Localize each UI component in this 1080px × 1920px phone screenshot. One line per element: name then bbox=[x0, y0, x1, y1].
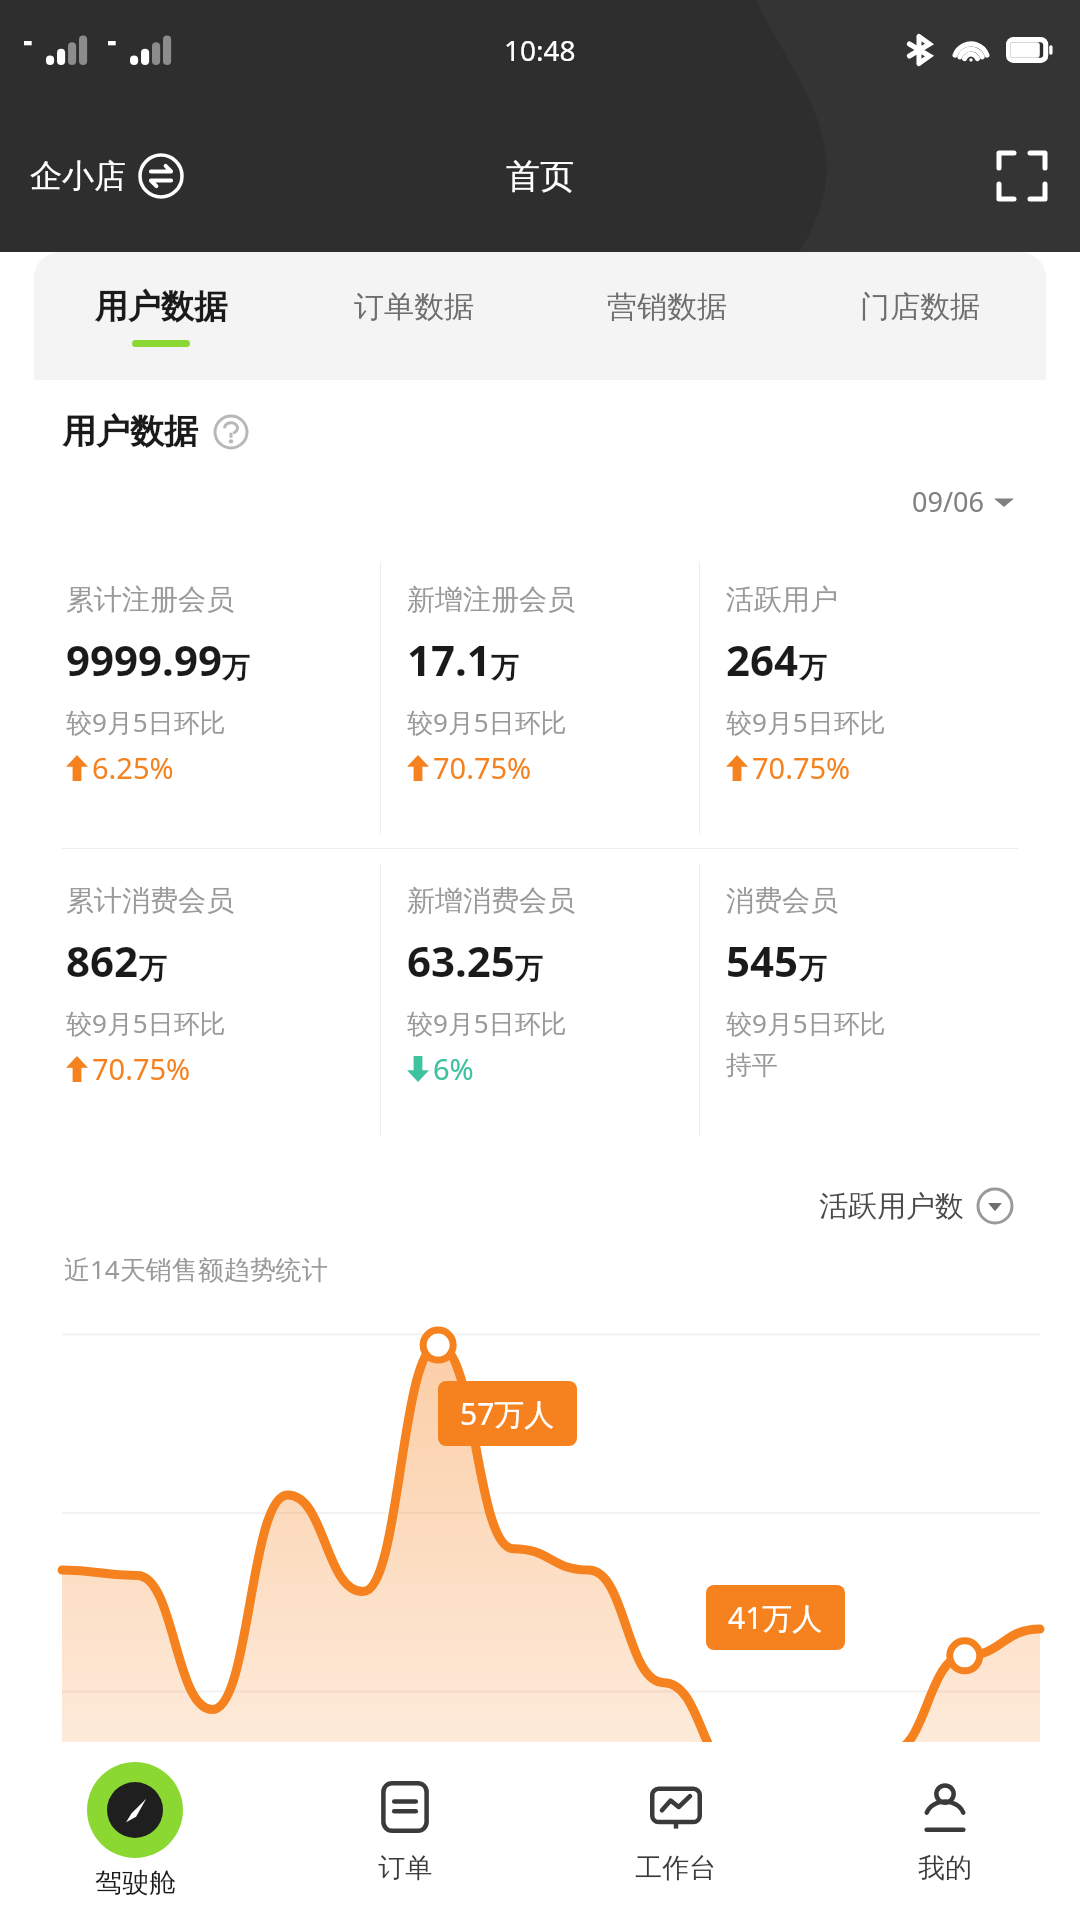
staticText: 70.75% bbox=[433, 748, 532, 787]
staticText: 545 bbox=[726, 932, 799, 989]
staticText: 首页 bbox=[506, 155, 574, 198]
staticText: 用户数据 bbox=[95, 286, 227, 328]
staticText: 用户数据 bbox=[62, 410, 198, 453]
staticText: 70.75% bbox=[92, 1049, 191, 1088]
button[interactable]: 门店数据 bbox=[793, 252, 1046, 380]
staticText: 累计注册会员 bbox=[66, 582, 234, 617]
button[interactable]: 累计消费会员 bbox=[62, 849, 380, 1149]
staticText: 10:48 bbox=[504, 31, 576, 69]
staticText: 企小店 bbox=[30, 156, 126, 196]
button[interactable]: 09/06 bbox=[908, 479, 1018, 524]
staticText: 我的 bbox=[918, 1851, 972, 1885]
staticText: 较9月5日环比 bbox=[407, 704, 567, 740]
staticText: 消费会员 bbox=[726, 883, 838, 918]
staticText: 累计消费会员 bbox=[66, 883, 234, 918]
staticText: 万 bbox=[515, 951, 543, 986]
staticText: 较9月5日环比 bbox=[66, 704, 226, 740]
staticText: 订单数据 bbox=[354, 288, 474, 326]
staticText: 持平 bbox=[726, 1049, 778, 1082]
button[interactable]: 累计注册会员 bbox=[62, 548, 380, 848]
staticText: 新增消费会员 bbox=[407, 883, 575, 918]
staticText: 近14天销售额趋势统计 bbox=[64, 1251, 328, 1287]
staticText: 6% bbox=[433, 1049, 474, 1088]
button[interactable]: 驾驶舱 bbox=[0, 1742, 270, 1920]
staticText: 订单 bbox=[378, 1851, 432, 1885]
button[interactable]: Help bbox=[212, 413, 250, 451]
staticText: 活跃用户数 bbox=[819, 1188, 964, 1225]
button[interactable]: 新增消费会员 bbox=[381, 849, 699, 1149]
staticText: 63.25 bbox=[407, 932, 515, 989]
button[interactable]: 订单 bbox=[270, 1742, 540, 1920]
staticText: 万 bbox=[799, 650, 827, 685]
staticText: 57万人 bbox=[460, 1393, 555, 1434]
button[interactable]: 新增注册会员 bbox=[381, 548, 699, 848]
staticText: 6.25% bbox=[92, 748, 174, 787]
staticText: 较9月5日环比 bbox=[407, 1005, 567, 1041]
staticText: 新增注册会员 bbox=[407, 582, 575, 617]
button[interactable]: 营销数据 bbox=[540, 252, 793, 380]
staticText: 较9月5日环比 bbox=[66, 1005, 226, 1041]
staticText: 70.75% bbox=[752, 748, 851, 787]
staticText: 较9月5日环比 bbox=[726, 704, 886, 740]
staticText: 万 bbox=[491, 650, 519, 685]
staticText: 营销数据 bbox=[607, 288, 727, 326]
staticText: 门店数据 bbox=[860, 288, 980, 326]
staticText: 活跃用户 bbox=[726, 582, 838, 617]
staticText: 41万人 bbox=[728, 1597, 823, 1638]
staticText: 264 bbox=[726, 631, 799, 688]
staticText: 万 bbox=[799, 951, 827, 986]
button[interactable]: 活跃用户 bbox=[700, 548, 1018, 848]
staticText: 工作台 bbox=[635, 1851, 716, 1885]
button[interactable]: 工作台 bbox=[540, 1742, 810, 1920]
staticText: 9999.99 bbox=[66, 631, 222, 688]
staticText: 较9月5日环比 bbox=[726, 1005, 886, 1041]
staticText: 万 bbox=[222, 650, 250, 685]
staticText: 万 bbox=[139, 951, 167, 986]
button[interactable]: 我的 bbox=[810, 1742, 1080, 1920]
staticText: 17.1 bbox=[407, 631, 491, 688]
staticText: 862 bbox=[66, 932, 139, 989]
staticText: 09/06 bbox=[912, 483, 984, 520]
button[interactable]: Scan bbox=[994, 148, 1050, 204]
button[interactable]: 消费会员 bbox=[700, 849, 1018, 1149]
button[interactable]: 用户数据 bbox=[34, 252, 287, 380]
button[interactable]: 企小店 bbox=[26, 149, 188, 203]
button[interactable]: 订单数据 bbox=[287, 252, 540, 380]
staticText: 驾驶舱 bbox=[95, 1866, 176, 1900]
button[interactable]: 活跃用户数 bbox=[815, 1183, 1018, 1229]
